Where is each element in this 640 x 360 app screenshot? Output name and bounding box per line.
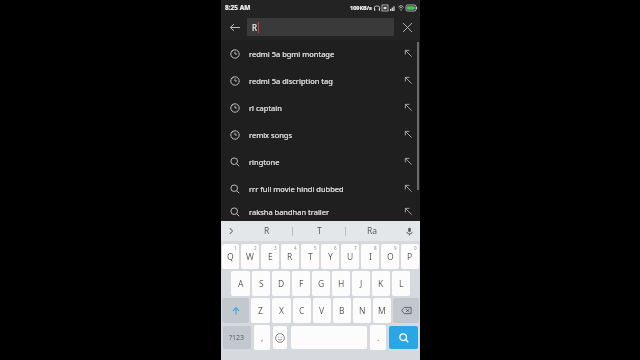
button[interactable]: redmi 5a discription tag (221, 67, 420, 94)
button[interactable]: rl captain (221, 94, 420, 121)
staticText: 1 (234, 245, 237, 251)
staticText: ringtone (249, 157, 396, 167)
staticText: O (387, 251, 394, 263)
staticText: E (268, 251, 273, 263)
staticText: A (238, 278, 244, 290)
staticText: H (338, 278, 345, 290)
staticText: C (299, 305, 305, 317)
staticText: redmi 5a bgmi montage (249, 49, 396, 59)
button[interactable]: B (333, 298, 351, 323)
button[interactable]: Insert suggestion (396, 67, 420, 94)
staticText: 7 (354, 245, 357, 251)
button[interactable]: N (353, 298, 371, 323)
staticText: T (317, 225, 322, 237)
button[interactable]: , (254, 325, 270, 350)
button[interactable]: K (372, 271, 390, 296)
button[interactable]: Insert suggestion (396, 202, 420, 221)
staticText: redmi 5a discription tag (249, 76, 396, 86)
button[interactable]: O (381, 244, 399, 269)
staticText: W (246, 251, 254, 263)
button[interactable]: Insert suggestion (396, 121, 420, 148)
button[interactable]: C (293, 298, 311, 323)
button[interactable]: U (341, 244, 359, 269)
button[interactable]: Insert suggestion (396, 148, 420, 175)
button[interactable]: redmi 5a bgmi montage (221, 40, 420, 67)
staticText: K (378, 278, 384, 290)
button[interactable]: Shift (222, 298, 249, 323)
button[interactable]: A (231, 271, 250, 296)
button[interactable]: Emoji (273, 326, 287, 349)
staticText: T (308, 251, 313, 263)
staticText: 2 (254, 245, 257, 251)
staticText: 5 (314, 245, 317, 251)
staticText: L (399, 278, 404, 290)
button[interactable]: E (261, 244, 279, 269)
button[interactable]: Y (321, 244, 339, 269)
button[interactable]: D (272, 271, 290, 296)
button[interactable]: Z (251, 298, 270, 323)
button[interactable]: G (312, 271, 330, 296)
button[interactable]: Insert suggestion (396, 40, 420, 67)
staticText: 6 (334, 245, 337, 251)
staticText: Y (328, 251, 333, 263)
button[interactable]: I (361, 244, 379, 269)
button[interactable]: M (373, 298, 391, 323)
button[interactable]: S (252, 271, 270, 296)
button[interactable]: remix songs (221, 121, 420, 148)
button[interactable]: T (301, 244, 319, 269)
staticText: rl captain (249, 103, 396, 113)
button[interactable]: Insert suggestion (396, 94, 420, 121)
button[interactable]: Clear (394, 14, 420, 40)
staticText: F (299, 278, 304, 290)
button[interactable]: Back (221, 14, 247, 40)
button[interactable]: R (247, 18, 394, 36)
button[interactable]: X (272, 298, 291, 323)
staticText: G (318, 278, 325, 290)
button[interactable]: Ra (346, 221, 398, 241)
button[interactable]: J (352, 271, 370, 296)
staticText: U (347, 251, 354, 263)
staticText: remix songs (249, 130, 396, 140)
button[interactable]: F (292, 271, 310, 296)
staticText: 4 (294, 245, 297, 251)
staticText: R (264, 225, 270, 237)
staticText: S (259, 278, 264, 290)
staticText: 9 (394, 245, 397, 251)
button[interactable]: ?123 (223, 326, 251, 349)
staticText: Z (258, 305, 263, 317)
button[interactable]: R (281, 244, 299, 269)
staticText: Ra (367, 225, 378, 237)
button[interactable]: W (241, 244, 259, 269)
button[interactable]: Search (389, 326, 418, 349)
button[interactable]: V (313, 298, 331, 323)
staticText: raksha bandhan trailer (249, 207, 396, 217)
button[interactable]: H (332, 271, 350, 296)
button[interactable]: L (392, 271, 410, 296)
button[interactable]: Backspace (393, 298, 419, 323)
button[interactable]: Voice input (398, 221, 420, 241)
button[interactable]: . (370, 325, 386, 350)
button[interactable]: Insert suggestion (396, 175, 420, 202)
staticText: P (407, 251, 413, 263)
staticText: I (369, 251, 372, 263)
staticText: Q (227, 251, 234, 263)
staticText: V (319, 305, 325, 317)
button[interactable]: ringtone (221, 148, 420, 175)
button[interactable]: P (401, 244, 419, 269)
button[interactable]: More (221, 221, 241, 241)
staticText: R (252, 22, 257, 33)
button[interactable]: R (241, 221, 292, 241)
staticText: J (360, 278, 363, 290)
staticText: 0 (414, 245, 417, 251)
button[interactable]: rrr full movie hindi dubbed (221, 175, 420, 202)
button[interactable]: Q (222, 244, 239, 269)
button[interactable]: raksha bandhan trailer (221, 202, 420, 221)
staticText: 109KB/s (350, 4, 372, 11)
button[interactable]: T (293, 221, 345, 241)
staticText: 3 (274, 245, 277, 251)
staticText: rrr full movie hindi dubbed (249, 184, 396, 194)
staticText: M (378, 305, 386, 317)
staticText: N (359, 305, 366, 317)
staticText: X (279, 305, 284, 317)
